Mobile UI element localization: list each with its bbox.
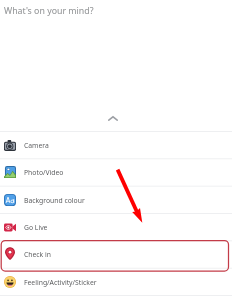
staticText: Feeling/Activity/Sticker [24,278,97,287]
staticText: Check in [24,250,51,259]
staticText: Go Live [24,223,48,232]
button[interactable]: Feeling/Activity/Sticker [0,268,232,295]
staticText: What's on your mind? [4,5,94,17]
button[interactable]: Check in [0,240,232,267]
button[interactable]: Collapse [103,108,123,128]
staticText: Photo/Video [24,168,64,177]
button[interactable]: Go Live [0,213,232,240]
button[interactable]: Photo/Video [0,158,232,185]
button[interactable]: Background colour [0,186,232,213]
staticText: Background colour [24,196,85,205]
staticText: Camera [24,141,49,150]
button[interactable]: Camera [0,131,232,158]
